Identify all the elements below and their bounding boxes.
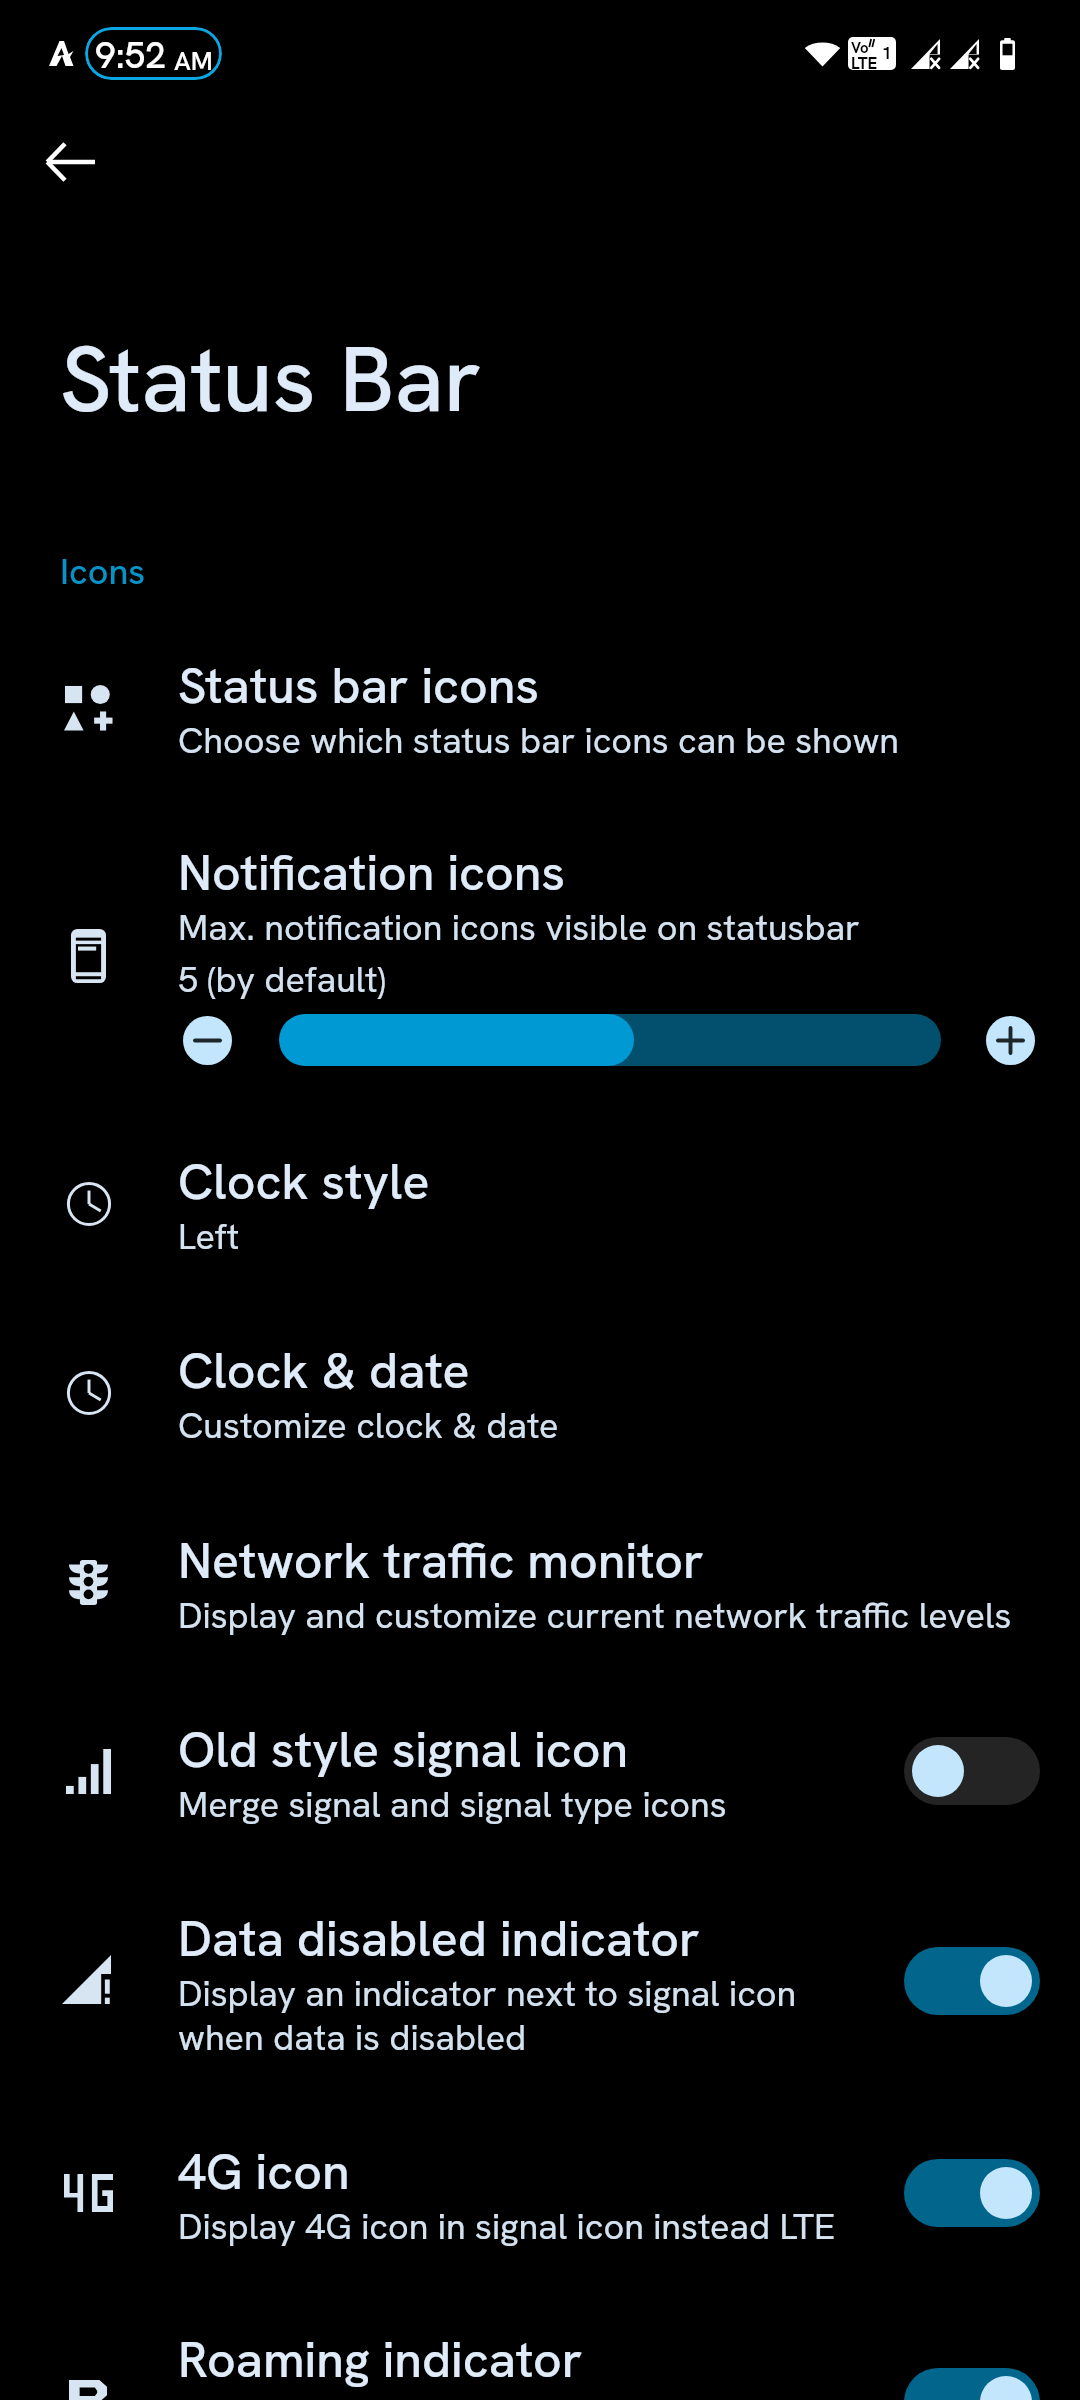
staticText: Left xyxy=(178,1213,240,1260)
staticText: 4G icon xyxy=(178,2139,350,2204)
staticText: Display and customize current network tr… xyxy=(178,1592,1012,1639)
staticText: 9:52 xyxy=(95,31,167,79)
button[interactable]: Back xyxy=(16,108,124,216)
staticText: LTE xyxy=(851,52,878,70)
staticText: Status bar icons xyxy=(178,653,539,718)
button[interactable] xyxy=(0,1877,1080,2091)
staticText: Choose which status bar icons can be sho… xyxy=(178,717,900,764)
button[interactable]: On xyxy=(904,1947,1040,2015)
staticText: AM xyxy=(174,44,213,78)
button[interactable] xyxy=(0,1688,1080,1858)
button[interactable] xyxy=(0,811,1080,1033)
button[interactable]: On xyxy=(904,2159,1040,2227)
button[interactable] xyxy=(0,2110,1080,2280)
staticText: Merge signal and signal type icons xyxy=(178,1781,727,1828)
staticText: Max. notification icons visible on statu… xyxy=(178,904,860,951)
staticText: Status Bar xyxy=(60,320,482,439)
staticText: 5 (by default) xyxy=(178,956,386,1003)
button[interactable] xyxy=(0,2298,1080,2400)
staticText: Customize clock & date xyxy=(178,1402,559,1449)
staticText: Network traffic monitor xyxy=(178,1528,704,1593)
staticText: Vo xyxy=(851,38,869,58)
staticText: Display an indicator next to signal icon xyxy=(178,1970,797,2017)
staticText: Notification icons xyxy=(178,840,565,905)
button[interactable]: Decrease xyxy=(183,1016,232,1065)
staticText: Old style signal icon xyxy=(178,1717,629,1782)
staticText: when data is disabled xyxy=(178,2014,527,2061)
button[interactable] xyxy=(0,1499,1080,1669)
button[interactable]: Off xyxy=(904,1737,1040,1805)
staticText: Icons xyxy=(60,548,146,595)
staticText: Display 4G icon in signal icon instead L… xyxy=(178,2203,836,2250)
button[interactable] xyxy=(0,1120,1080,1290)
button[interactable] xyxy=(0,624,1080,794)
staticText: 1 xyxy=(882,42,892,64)
staticText: Roaming indicator xyxy=(178,2327,583,2392)
button[interactable] xyxy=(0,1309,1080,1479)
staticText: Data disabled indicator xyxy=(178,1906,700,1971)
button[interactable]: On xyxy=(904,2368,1040,2400)
staticText: Clock style xyxy=(178,1149,430,1214)
button[interactable]: Increase xyxy=(986,1016,1035,1065)
staticText: Clock & date xyxy=(178,1338,470,1403)
button[interactable]: Notification icon count xyxy=(279,1014,941,1066)
